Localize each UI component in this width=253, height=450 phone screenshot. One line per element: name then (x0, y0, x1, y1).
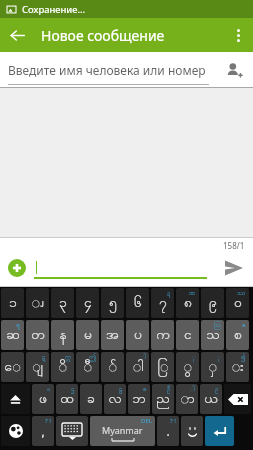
button[interactable]: ခ (80, 384, 102, 414)
staticText: ၥ (9, 293, 17, 314)
button[interactable]: Back (0, 18, 34, 52)
button[interactable] (34, 248, 207, 287)
button[interactable]: က (151, 320, 174, 350)
button[interactable]: ယ (200, 384, 222, 414)
staticText: ျ (32, 357, 43, 378)
staticText: က (156, 325, 170, 346)
staticText: ီ (83, 357, 92, 378)
button[interactable]: ှ (201, 352, 224, 382)
staticText: ဓ (143, 385, 147, 394)
staticText: ဣ (65, 353, 71, 362)
button[interactable]: ြ (151, 352, 174, 382)
button[interactable]: ာ (176, 384, 198, 414)
button[interactable]: ေ (1, 352, 24, 382)
staticText: ဋ (42, 353, 46, 362)
button[interactable]: ် (101, 352, 124, 382)
button[interactable]: ဆ (1, 320, 24, 350)
staticText: ေ (4, 357, 21, 378)
staticText: အ (106, 325, 119, 346)
button[interactable]: တ (26, 320, 49, 350)
button[interactable]: စ (226, 320, 249, 350)
button[interactable]: Send (215, 249, 253, 287)
staticText: DEL (141, 417, 152, 425)
button[interactable]: ပ (126, 320, 149, 350)
staticText: စ (234, 325, 242, 346)
button[interactable]: ိ (51, 352, 74, 382)
staticText: ၃ (59, 293, 67, 314)
staticText: ြ (157, 357, 169, 378)
staticText: ၅ (109, 293, 117, 314)
staticText: ဠ (119, 385, 123, 394)
button[interactable]: သ (201, 320, 224, 350)
staticText: ခ (87, 389, 95, 410)
button[interactable]: ွ (176, 352, 199, 382)
staticText: ဆ (6, 325, 20, 346)
button[interactable]: င (176, 320, 199, 350)
button[interactable] (1, 384, 30, 414)
button[interactable]: ျ (26, 352, 49, 382)
button[interactable]: ဖ (32, 384, 54, 414)
button[interactable]: More options (223, 18, 253, 52)
staticText: ာ (180, 389, 195, 410)
button[interactable] (205, 416, 234, 446)
button[interactable]: . (157, 416, 179, 446)
button[interactable]: ၅ (101, 288, 124, 318)
button[interactable]: ၄ (76, 288, 99, 318)
button[interactable]: ၉ (201, 288, 224, 318)
staticText: န (59, 325, 67, 346)
button[interactable]: ည (152, 384, 174, 414)
button[interactable] (1, 416, 30, 446)
staticText: ၈ (184, 293, 192, 314)
button[interactable]: ၆ (126, 288, 149, 318)
staticText: ၪ (31, 293, 44, 314)
staticText: သ (206, 325, 220, 346)
button[interactable]: း (226, 352, 249, 382)
button[interactable]: ထ (56, 384, 78, 414)
button[interactable]: Введите имя человека или номер (8, 52, 209, 88)
staticText: ဤ (89, 353, 96, 362)
staticText: မ (84, 325, 92, 346)
staticText: ဦ (167, 385, 171, 394)
staticText: ၀ (234, 293, 242, 314)
button[interactable]: ၈ (176, 288, 199, 318)
staticText: လ (108, 389, 122, 410)
staticText: ယ (204, 389, 218, 410)
button[interactable]: Add contact (215, 52, 253, 88)
button[interactable]: ၃ (51, 288, 74, 318)
button[interactable]: န (51, 320, 74, 350)
staticText: တ (31, 325, 45, 346)
button[interactable]: ၥ (1, 288, 24, 318)
button[interactable]: အ (101, 320, 124, 350)
staticText: 158/1 (223, 240, 245, 251)
staticText: ဿ (237, 289, 246, 298)
button[interactable]: ၪ (26, 288, 49, 318)
staticText: ဩ (214, 321, 221, 330)
button[interactable]: ီ (76, 352, 99, 382)
staticText: ် (108, 357, 117, 378)
staticText: ဖ (39, 389, 47, 410)
staticText: ည (156, 389, 170, 410)
staticText: ဎ (47, 385, 51, 394)
staticText: ပ (134, 325, 142, 346)
button[interactable]: Add attachment (0, 251, 34, 285)
staticText: ှ (208, 357, 217, 378)
button[interactable] (224, 384, 251, 414)
button[interactable]: ၇ (151, 288, 174, 318)
staticText: Введите имя человека или номер (8, 62, 206, 78)
button[interactable]: မ (76, 320, 99, 350)
staticText: ၉ (209, 293, 217, 314)
button[interactable]: ါ (126, 352, 149, 382)
staticText: ? ! (45, 417, 51, 425)
button[interactable]: ၀ (226, 288, 249, 318)
button[interactable] (56, 416, 88, 446)
button[interactable]: လ (104, 384, 126, 414)
button[interactable] (181, 416, 203, 446)
staticText: ဘ (132, 389, 146, 410)
staticText: . (166, 423, 170, 439)
button[interactable]: , (32, 416, 54, 446)
staticText: ဏ (189, 289, 196, 298)
button[interactable]: ဘ (128, 384, 150, 414)
staticText: ှ (217, 353, 221, 362)
button[interactable]: DEL (90, 416, 155, 446)
